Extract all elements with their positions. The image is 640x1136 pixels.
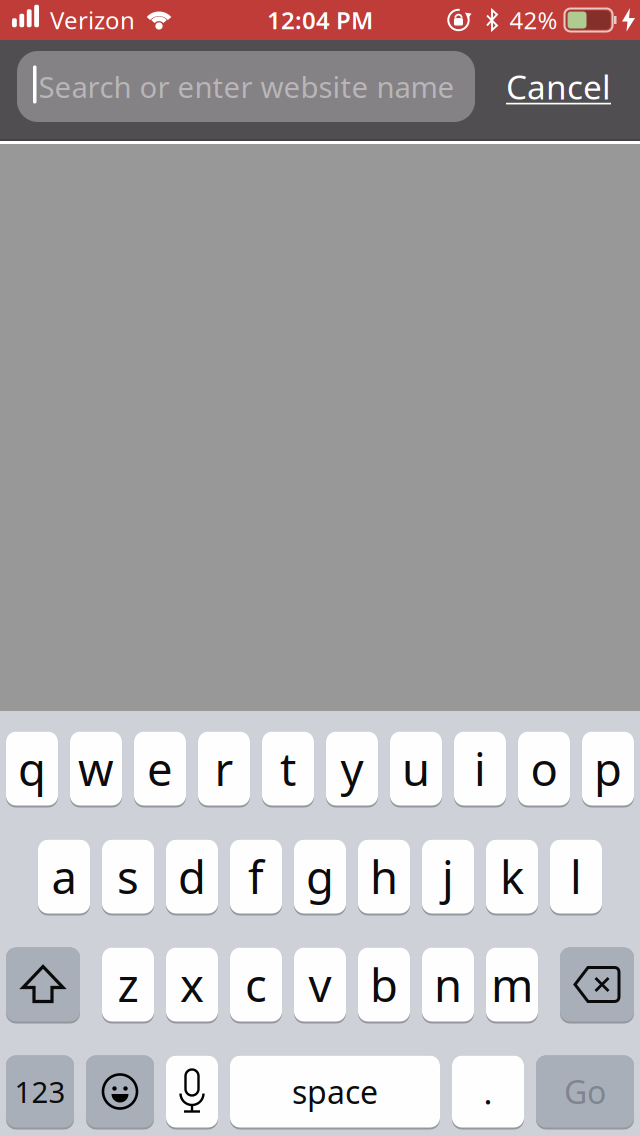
button[interactable]: w [70,731,122,807]
staticText: Go [564,1070,606,1113]
staticText: g [306,846,334,907]
button[interactable]: k [486,839,538,915]
button[interactable]: 123 [6,1055,74,1129]
button[interactable]: b [358,947,410,1023]
staticText: Cancel [506,64,611,109]
button[interactable]: . [452,1055,524,1129]
staticText: j [442,846,454,907]
button[interactable]: n [422,947,474,1023]
staticText: space [292,1070,378,1113]
button[interactable]: l [550,839,602,915]
staticText: 123 [14,1072,65,1111]
staticText: f [248,846,264,907]
button[interactable]: a [38,839,90,915]
staticText: . [483,1069,492,1114]
button[interactable]: y [326,731,378,807]
staticText: z [117,954,138,1015]
staticText: Verizon [50,4,135,36]
staticText: o [530,738,557,799]
staticText: l [570,846,582,907]
button[interactable]: d [166,839,218,915]
staticText: h [370,846,398,907]
staticText: y [340,738,363,799]
button[interactable]: v [294,947,346,1023]
staticText: c [245,954,267,1015]
button[interactable]: i [454,731,506,807]
staticText: q [18,738,46,799]
button[interactable]: Delete [560,947,634,1023]
staticText: w [78,738,114,799]
staticText: d [178,846,206,907]
staticText: x [180,954,204,1015]
staticText: p [594,738,622,799]
staticText: e [147,738,173,799]
staticText: r [214,738,233,799]
button[interactable]: s [102,839,154,915]
button[interactable]: j [422,839,474,915]
staticText: s [117,846,139,907]
staticText: a [51,846,76,907]
button[interactable]: Shift [6,947,80,1023]
button[interactable]: c [230,947,282,1023]
button[interactable]: h [358,839,410,915]
button[interactable]: m [486,947,538,1023]
staticText: n [434,954,462,1015]
button[interactable]: z [102,947,154,1023]
staticText: v [308,954,331,1015]
button[interactable]: p [582,731,634,807]
button[interactable]: Emoji [86,1055,154,1129]
button[interactable]: Cancel [506,64,611,109]
button[interactable]: Dictate [166,1055,218,1129]
button[interactable]: r [198,731,250,807]
staticText: k [500,846,524,907]
staticText: b [370,954,398,1015]
staticText: u [402,738,430,799]
button[interactable]: f [230,839,282,915]
button[interactable]: Search or enter website name [17,51,475,122]
button[interactable]: t [262,731,314,807]
staticText: 42% [509,4,557,36]
button[interactable]: space [230,1055,440,1129]
button[interactable]: g [294,839,346,915]
button[interactable]: x [166,947,218,1023]
staticText: i [474,738,486,799]
button[interactable]: q [6,731,58,807]
staticText: t [280,738,296,799]
button[interactable]: Go [536,1055,634,1129]
button[interactable]: o [518,731,570,807]
button[interactable]: u [390,731,442,807]
staticText: Search or enter website name [38,67,454,106]
staticText: m [491,954,533,1015]
button[interactable]: e [134,731,186,807]
staticText: 12:04 PM [267,4,373,36]
